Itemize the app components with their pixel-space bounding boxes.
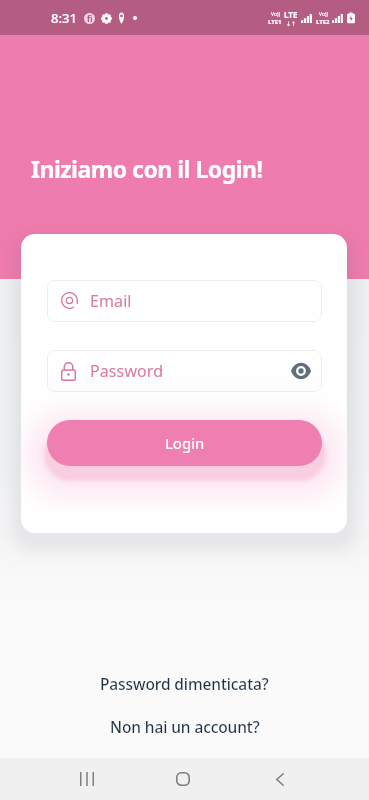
staticText: ↓↑	[286, 20, 297, 27]
staticText: Non hai un account?	[110, 716, 260, 737]
staticText: LTE	[284, 9, 298, 20]
button[interactable]: Show password	[288, 358, 314, 384]
staticText: fi	[87, 13, 93, 24]
button[interactable]: Recents	[64, 758, 109, 800]
button[interactable]: Login	[47, 420, 322, 466]
button[interactable]: Password dimenticata?	[90, 668, 279, 699]
staticText: Vo))	[271, 11, 280, 18]
staticText: LTE1	[268, 18, 282, 26]
staticText: Password	[90, 360, 164, 382]
staticText: 8:31	[51, 9, 77, 27]
staticText: LTE2	[316, 18, 330, 26]
button[interactable]: Non hai un account?	[100, 711, 270, 742]
staticText: Iniziamo con il Login!	[31, 153, 263, 184]
staticText: Password dimenticata?	[100, 673, 269, 694]
button[interactable]: Password	[47, 350, 322, 392]
staticText: Vo))	[319, 11, 328, 18]
staticText: Login	[165, 433, 205, 453]
button[interactable]: Home	[160, 758, 205, 800]
button[interactable]: Back	[257, 758, 302, 800]
staticText: Email	[90, 290, 132, 312]
button[interactable]: Email	[47, 280, 322, 322]
